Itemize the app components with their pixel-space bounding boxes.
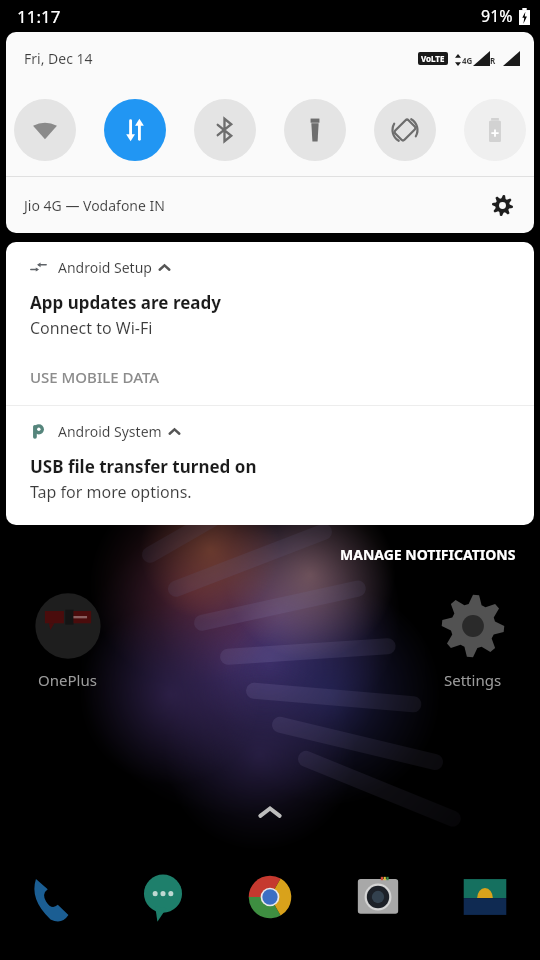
staticText: App updates are ready <box>30 291 221 314</box>
button[interactable]: Wi-Fi <box>14 99 76 161</box>
staticText: Android Setup <box>58 258 152 277</box>
staticText: USE MOBILE DATA <box>30 367 160 387</box>
button[interactable]: OnePlus <box>0 592 135 690</box>
button[interactable]: Camera <box>347 866 409 928</box>
button[interactable]: Bluetooth <box>194 99 256 161</box>
button[interactable]: Mobile data <box>104 99 166 161</box>
staticText: Fri, Dec 14 <box>24 49 93 68</box>
staticText: R <box>490 55 496 66</box>
staticText: 91% <box>481 5 513 27</box>
button[interactable]: Phone <box>24 866 86 928</box>
staticText: Jio 4G — Vodafone IN <box>24 196 165 215</box>
staticText: MANAGE NOTIFICATIONS <box>340 545 516 564</box>
button[interactable]: MANAGE NOTIFICATIONS <box>316 539 540 570</box>
staticText: Settings <box>444 670 502 690</box>
button[interactable]: Settings <box>405 592 540 690</box>
button[interactable]: Battery saver <box>464 99 526 161</box>
staticText: 4G <box>462 55 473 66</box>
button[interactable]: USE MOBILE DATA <box>6 367 534 405</box>
button[interactable]: Settings <box>482 185 522 225</box>
button[interactable]: Flashlight <box>284 99 346 161</box>
staticText: VoLTE <box>421 53 445 64</box>
button[interactable]: Messages <box>132 866 194 928</box>
staticText: Tap for more options. <box>30 481 192 503</box>
button[interactable]: Gallery <box>454 866 516 928</box>
staticText: 11:17 <box>17 5 61 28</box>
button[interactable]: Auto rotate <box>374 99 436 161</box>
staticText: Android System <box>58 422 162 441</box>
button[interactable]: Android Setup <box>6 242 534 367</box>
staticText: Connect to Wi-Fi <box>30 317 153 339</box>
button[interactable]: Open app drawer <box>248 790 292 834</box>
button[interactable]: Android System <box>6 406 534 525</box>
staticText: OnePlus <box>38 670 97 690</box>
button[interactable]: Chrome <box>239 866 301 928</box>
staticText: USB file transfer turned on <box>30 455 257 478</box>
